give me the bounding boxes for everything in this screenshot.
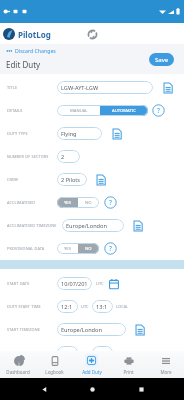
button[interactable]: Back <box>39 384 49 394</box>
staticText: 2 <box>61 153 65 161</box>
staticText: Dashboard <box>6 369 30 375</box>
staticText: PROVISIONAL DATA <box>7 246 45 251</box>
button[interactable]: Sync <box>84 26 100 42</box>
staticText: 12:15 <box>61 303 74 311</box>
button[interactable]: YES <box>57 243 99 254</box>
staticText: 13:15 <box>96 303 109 311</box>
staticText: ACCLIMATISED TIMEZONE <box>7 223 57 228</box>
button[interactable]: Europe/London <box>57 323 126 336</box>
staticText: ? <box>157 106 160 115</box>
staticText: DUTY TYPE <box>7 131 28 136</box>
button[interactable]: Europe/London <box>62 219 124 232</box>
staticText: DETAILS <box>7 108 23 113</box>
staticText: Europe/London <box>61 326 102 334</box>
button[interactable]: Print <box>110 351 147 378</box>
staticText: ◂◂◂ <box>6 48 13 53</box>
button[interactable]: 2 Pilots <box>57 173 87 186</box>
button[interactable]: Help <box>104 242 117 255</box>
staticText: LOCAL <box>116 304 129 309</box>
staticText: ACCLIMATISED <box>7 200 36 205</box>
button[interactable]: Duty type notes <box>111 128 123 140</box>
staticText: YES <box>64 200 71 206</box>
button[interactable]: Help <box>104 196 117 209</box>
button[interactable]: Dashboard <box>0 351 36 378</box>
staticText: NO <box>85 246 92 252</box>
button[interactable]: PilotLog <box>3 28 51 40</box>
button[interactable]: 10/07/2012 <box>57 277 92 290</box>
button[interactable]: Flying <box>57 127 102 140</box>
button[interactable]: 21:15 <box>57 346 78 359</box>
button[interactable]: More <box>147 351 184 378</box>
staticText: NUMBER OF SECTORS <box>7 154 49 159</box>
button[interactable]: LGW-AYT-LGW <box>57 81 153 94</box>
staticText: AUTOMATIC <box>112 108 136 114</box>
staticText: UTC <box>81 304 89 309</box>
button[interactable]: 13:15 <box>92 300 113 313</box>
button[interactable]: 22:15 <box>92 346 113 359</box>
button[interactable]: Save <box>149 53 174 66</box>
staticText: START DATE <box>7 281 30 286</box>
staticText: TITLE <box>7 85 18 90</box>
staticText: ? <box>109 198 112 207</box>
button[interactable]: Timezone notes <box>134 324 146 336</box>
staticText: UTC <box>81 350 89 355</box>
staticText: Flying <box>61 130 77 138</box>
staticText: UTC <box>96 281 104 286</box>
staticText: Save <box>155 56 169 64</box>
staticText: DUTY START TIME <box>7 304 41 309</box>
button[interactable]: MANUAL <box>57 105 148 116</box>
staticText: 22:15 <box>96 349 109 357</box>
staticText: CREW <box>7 177 19 182</box>
staticText: Add Duty <box>82 369 102 375</box>
staticText: More <box>160 369 172 375</box>
button[interactable]: Home <box>87 384 97 394</box>
staticText: START TIMEZONE <box>7 327 40 332</box>
staticText: Discard Changes <box>15 47 56 54</box>
button[interactable]: YES <box>57 197 99 208</box>
button[interactable]: 12:15 <box>57 300 78 313</box>
staticText: Edit Duty <box>6 59 41 70</box>
staticText: MANUAL <box>70 108 88 114</box>
staticText: Europe/London <box>66 222 107 230</box>
staticText: YES <box>64 246 71 252</box>
staticText: 10/07/2012 <box>61 280 88 288</box>
button[interactable]: Help <box>152 104 165 117</box>
staticText: 2 Pilots <box>61 176 81 184</box>
staticText: LGW-AYT-LGW <box>61 84 99 92</box>
button[interactable]: Timezone notes <box>132 220 144 232</box>
button[interactable]: Recents <box>136 384 146 394</box>
button[interactable]: Pick date <box>108 278 120 290</box>
button[interactable]: Add Duty <box>73 351 110 378</box>
staticText: Print <box>123 369 134 375</box>
staticText: PilotLog <box>18 29 51 40</box>
staticText: NO <box>85 200 92 206</box>
button[interactable]: 2 <box>57 150 80 163</box>
button[interactable]: Notes <box>162 82 174 94</box>
staticText: ? <box>109 244 112 253</box>
button[interactable]: Logbook <box>36 351 73 378</box>
button[interactable]: ◂◂◂ <box>6 47 56 54</box>
button[interactable]: Crew notes <box>95 174 107 186</box>
staticText: Logbook <box>45 369 64 375</box>
